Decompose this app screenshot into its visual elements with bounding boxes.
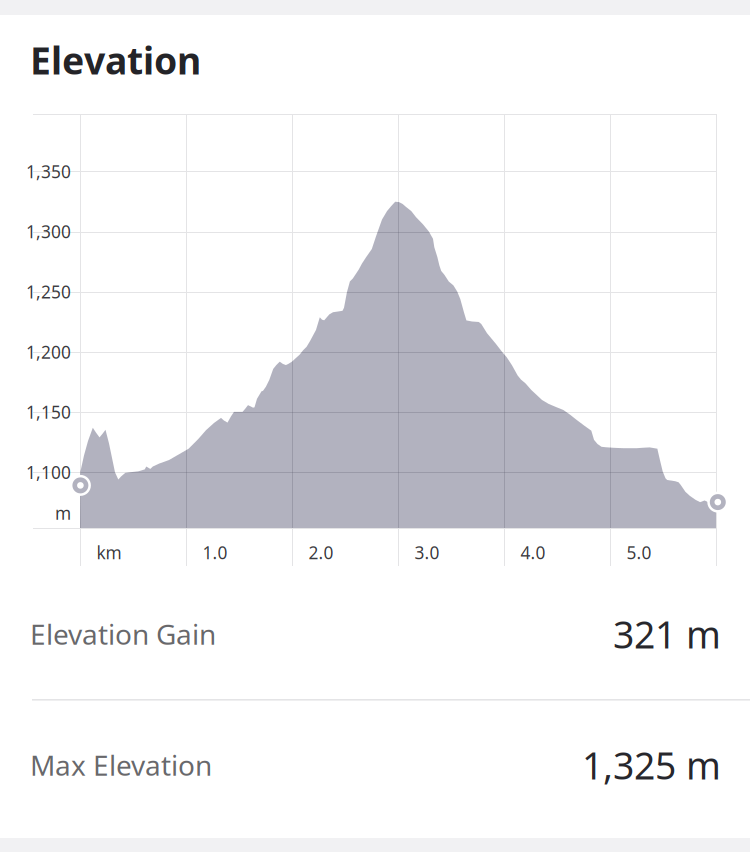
staticText: 1,325 m — [582, 740, 721, 790]
staticText: 1,150 — [26, 401, 71, 424]
staticText: 2.0 — [308, 541, 333, 564]
staticText: 1,350 — [26, 160, 71, 183]
staticText: 1,300 — [26, 220, 71, 243]
staticText: 1.0 — [202, 541, 227, 564]
staticText: 3.0 — [414, 541, 439, 564]
staticText: Elevation Gain — [30, 615, 216, 653]
staticText: Max Elevation — [30, 746, 212, 784]
staticText: km — [96, 541, 121, 564]
staticText: 1,250 — [26, 280, 71, 303]
staticText: 4.0 — [520, 541, 545, 564]
button[interactable]: Max Elevation — [30, 732, 721, 798]
button[interactable]: Elevation Gain — [30, 601, 721, 667]
staticText: 321 m — [613, 609, 721, 659]
staticText: 1,200 — [26, 340, 71, 363]
staticText: m — [55, 501, 71, 524]
staticText: Elevation — [30, 35, 201, 85]
staticText: 1,100 — [26, 461, 71, 484]
staticText: 5.0 — [626, 541, 651, 564]
